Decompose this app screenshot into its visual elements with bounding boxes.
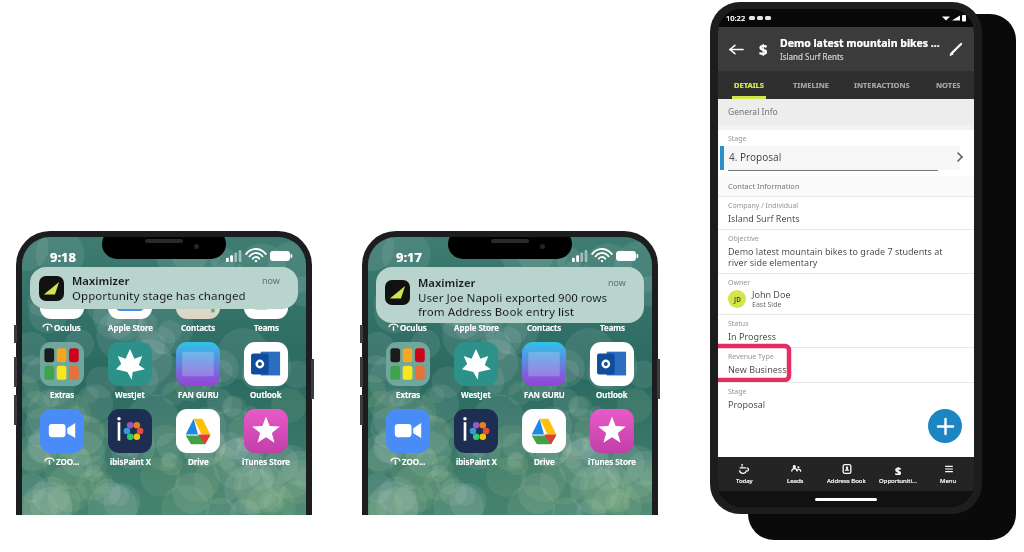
button[interactable]: Status	[718, 315, 974, 347]
button[interactable]: Contacts	[512, 275, 576, 333]
staticText: Revenue Type	[728, 352, 774, 362]
button[interactable]: Revenue Type	[718, 348, 974, 380]
staticText: Contact Information	[728, 181, 800, 191]
button[interactable]: FAN GURU	[512, 342, 576, 400]
staticText: Outlook	[596, 389, 628, 400]
staticText: Maximizer	[72, 273, 130, 288]
button[interactable]: FAN GURU	[166, 342, 230, 400]
staticText: Status	[728, 319, 749, 329]
staticText: New Business	[728, 363, 787, 375]
button[interactable]: Oculus	[376, 275, 440, 333]
button[interactable]: ibisPaint X	[444, 409, 508, 467]
button[interactable]: Drive	[166, 409, 230, 467]
staticText: Opportuniti...	[879, 477, 917, 485]
button[interactable]: WestJet	[444, 342, 508, 400]
staticText: John Doe	[752, 288, 791, 300]
staticText: WestJet	[115, 389, 145, 400]
button[interactable]: Stage	[718, 383, 974, 415]
button[interactable]: Objective	[718, 230, 974, 273]
button[interactable]: WestJet	[98, 342, 162, 400]
button[interactable]: Teams	[580, 275, 644, 333]
staticText: Contacts	[527, 322, 562, 333]
staticText: User Joe Napoli exported 900 rows from A…	[418, 290, 608, 319]
staticText: FAN GURU	[524, 389, 565, 400]
staticText: Demo latest mountain bikes …	[780, 36, 940, 50]
button[interactable]: NOTES	[922, 71, 974, 99]
staticText: $	[759, 39, 768, 59]
button[interactable]: Today	[718, 457, 770, 491]
staticText: now	[262, 274, 280, 286]
staticText: Extras	[50, 389, 75, 400]
button[interactable]: $	[872, 457, 923, 491]
staticText: Opportunity stage has changed	[72, 288, 246, 304]
button[interactable]: INTERACTIONS	[842, 71, 922, 99]
staticText: ibisPaint X	[110, 456, 151, 467]
staticText: Leads	[787, 477, 804, 485]
button[interactable]: DETAILS	[718, 71, 780, 99]
button[interactable]: Maximizer	[376, 267, 644, 323]
button[interactable]: Edit	[944, 37, 968, 61]
staticText: Teams	[600, 322, 625, 333]
button[interactable]: Menu	[923, 457, 974, 491]
button[interactable]: Address Book	[821, 457, 872, 491]
staticText: 9:18	[50, 248, 76, 266]
button[interactable]: Oculus	[30, 275, 94, 333]
staticText: ZOO...	[56, 456, 80, 467]
staticText: iTunes Store	[242, 456, 290, 467]
button[interactable]: Outlook	[580, 342, 644, 400]
button[interactable]: Company / Individual	[718, 197, 974, 229]
staticText: Drive	[534, 456, 555, 467]
button[interactable]: ibisPaint X	[98, 409, 162, 467]
staticText: General Info	[728, 106, 778, 118]
staticText: WestJet	[461, 389, 491, 400]
staticText: Stage	[728, 134, 747, 144]
staticText: Island Surf Rents	[780, 51, 844, 62]
staticText: $	[895, 463, 902, 475]
button[interactable]: Leads	[770, 457, 821, 491]
button[interactable]: ZOO...	[376, 409, 440, 467]
button[interactable]: Owner	[718, 274, 974, 314]
staticText: 9:17	[396, 248, 422, 266]
staticText: Demo latest mountain bikes to grade 7 st…	[728, 245, 943, 268]
staticText: Address Book	[827, 477, 866, 485]
button[interactable]: Extras	[30, 342, 94, 400]
staticText: 10:22	[726, 13, 746, 23]
staticText: JD	[734, 295, 741, 304]
staticText: Maximizer	[418, 275, 476, 290]
staticText: Apple Store	[454, 322, 499, 333]
staticText: ZOO...	[402, 456, 426, 467]
staticText: Stage	[728, 387, 747, 397]
button[interactable]: Teams	[234, 275, 298, 333]
button[interactable]: Back	[724, 37, 748, 61]
staticText: Oculus	[54, 322, 81, 333]
staticText: Objective	[728, 234, 759, 244]
button[interactable]: Stage	[718, 130, 974, 176]
staticText: 4. Proposal	[729, 150, 782, 164]
button[interactable]: Maximizer	[30, 267, 298, 309]
staticText: Menu	[940, 477, 957, 485]
button[interactable]: iTunes Store	[580, 409, 644, 467]
staticText: FAN GURU	[178, 389, 219, 400]
button[interactable]: Extras	[376, 342, 440, 400]
staticText: East Side	[752, 300, 782, 310]
button[interactable]: iTunes Store	[234, 409, 298, 467]
staticText: Island Surf Rents	[728, 212, 800, 224]
staticText: Today	[736, 477, 753, 485]
button[interactable]: Apple Store	[98, 275, 162, 333]
staticText: ibisPaint X	[456, 456, 497, 467]
staticText: Contacts	[181, 322, 216, 333]
button[interactable]: TIMELINE	[780, 71, 842, 99]
button[interactable]: Add	[928, 409, 962, 443]
staticText: TIMELINE	[793, 80, 829, 90]
button[interactable]: Drive	[512, 409, 576, 467]
button[interactable]: Outlook	[234, 342, 298, 400]
staticText: Owner	[728, 278, 751, 288]
staticText: DETAILS	[734, 80, 764, 90]
staticText: now	[608, 276, 626, 288]
staticText: NOTES	[936, 80, 961, 90]
button[interactable]: Contacts	[166, 275, 230, 333]
button[interactable]: Apple Store	[444, 275, 508, 333]
staticText: Proposal	[728, 398, 766, 410]
staticText: Teams	[254, 322, 279, 333]
button[interactable]: ZOO...	[30, 409, 94, 467]
